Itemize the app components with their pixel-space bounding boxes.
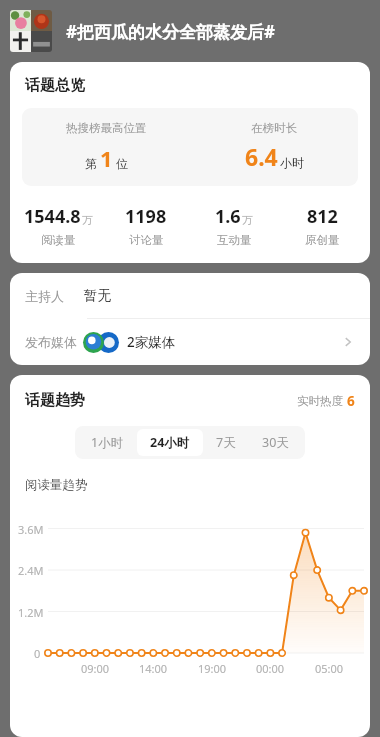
staticText: 暂无 — [84, 287, 111, 304]
button[interactable]: Topic cover image — [10, 10, 52, 52]
button[interactable]: 1.6 — [190, 204, 278, 247]
staticText: 1198 — [125, 204, 167, 229]
staticText: 00:00 — [256, 661, 285, 676]
staticText: 2.4M — [18, 563, 44, 578]
staticText: 6 — [347, 392, 355, 410]
staticText: 原创量 — [305, 233, 340, 247]
button[interactable]: 发布媒体 — [10, 319, 370, 365]
button[interactable]: 主持人 — [10, 273, 370, 318]
button[interactable]: 7天 — [203, 429, 249, 456]
staticText: 1.6 — [215, 204, 241, 229]
staticText: 19:00 — [198, 661, 227, 676]
staticText: 万 — [82, 213, 93, 227]
staticText: 05:00 — [315, 661, 344, 676]
staticText: 话题总览 — [25, 76, 85, 95]
staticText: 1544.8 — [24, 204, 81, 229]
staticText: 话题趋势 — [25, 391, 85, 410]
staticText: 主持人 — [25, 288, 64, 304]
staticText: 14:00 — [139, 661, 168, 676]
button[interactable]: 24小时 — [137, 429, 203, 456]
button[interactable]: 1544.8 — [14, 204, 102, 247]
staticText: 讨论量 — [129, 233, 164, 247]
staticText: 24小时 — [150, 434, 190, 451]
staticText: 30天 — [262, 434, 289, 451]
staticText: 热搜榜最高位置 — [66, 121, 147, 135]
staticText: 09:00 — [81, 661, 110, 676]
staticText: 2家媒体 — [127, 333, 176, 351]
button[interactable]: 1小时 — [78, 429, 137, 456]
staticText: 0 — [34, 646, 41, 661]
staticText: 7天 — [216, 434, 236, 451]
staticText: 1.2M — [18, 605, 44, 620]
staticText: 6.4 — [245, 141, 278, 172]
button[interactable]: 1198 — [102, 204, 190, 247]
staticText: 1小时 — [91, 434, 124, 451]
button[interactable]: 812 — [278, 204, 366, 247]
staticText: #把西瓜的水分全部蒸发后# — [66, 20, 275, 43]
staticText: 发布媒体 — [25, 334, 77, 350]
staticText: 阅读量 — [41, 233, 76, 247]
staticText: 阅读量趋势 — [25, 477, 88, 493]
button[interactable]: 30天 — [249, 429, 302, 456]
staticText: 万 — [242, 213, 253, 227]
staticText: 实时热度 — [297, 394, 343, 408]
staticText: 小时 — [280, 155, 304, 170]
staticText: 812 — [307, 204, 338, 229]
staticText: 在榜时长 — [251, 121, 297, 135]
staticText: 第 — [85, 156, 97, 171]
staticText: 1 — [100, 143, 113, 173]
button[interactable]: View publishing media — [340, 334, 356, 350]
staticText: 互动量 — [217, 233, 252, 247]
staticText: 位 — [116, 156, 128, 171]
staticText: 3.6M — [18, 522, 44, 537]
